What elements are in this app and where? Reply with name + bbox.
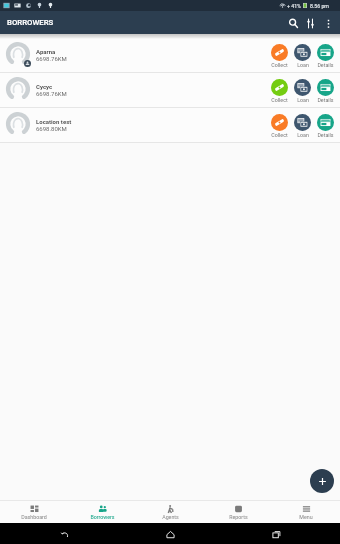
staticText: 8.56 pm: [310, 3, 329, 9]
button[interactable]: Loan: [291, 114, 314, 138]
button[interactable]: Back: [55, 525, 73, 543]
button[interactable]: Loan: [291, 44, 314, 68]
staticText: Loan: [297, 62, 309, 68]
button[interactable]: Menu: [272, 501, 340, 523]
button[interactable]: Search: [284, 14, 302, 32]
staticText: Cycyc: [36, 83, 53, 90]
staticText: Collect: [271, 97, 288, 103]
staticText: Menu: [299, 514, 313, 520]
button[interactable]: Details: [314, 114, 337, 138]
button[interactable]: Recents: [267, 525, 285, 543]
staticText: + 41%: [287, 3, 301, 9]
staticText: Reports: [229, 514, 248, 520]
staticText: Borrowers: [90, 514, 115, 520]
staticText: BORROWERS: [7, 18, 54, 27]
button[interactable]: Add borrower: [310, 469, 334, 493]
staticText: Location test: [36, 118, 72, 125]
staticText: Details: [317, 62, 334, 68]
button[interactable]: Details: [314, 79, 337, 103]
staticText: Loan: [297, 97, 309, 103]
button[interactable]: Filter: [302, 15, 319, 32]
button[interactable]: Borrowers: [68, 501, 136, 523]
button[interactable]: Collect: [268, 79, 291, 103]
button[interactable]: Location test: [0, 108, 340, 143]
staticText: Loan: [297, 132, 309, 138]
staticText: Agents: [162, 514, 179, 520]
button[interactable]: More options: [319, 14, 337, 32]
staticText: Collect: [271, 132, 288, 138]
staticText: Details: [317, 97, 334, 103]
staticText: Collect: [271, 62, 288, 68]
button[interactable]: Collect: [268, 114, 291, 138]
button[interactable]: Home: [161, 525, 179, 543]
button[interactable]: Details: [314, 44, 337, 68]
button[interactable]: Cycyc: [0, 73, 340, 108]
button[interactable]: Aparna: [0, 38, 340, 73]
staticText: 6698.80KM: [36, 125, 67, 132]
button[interactable]: Collect: [268, 44, 291, 68]
staticText: 6698.76KM: [36, 90, 67, 97]
button[interactable]: Loan: [291, 79, 314, 103]
staticText: Details: [317, 132, 334, 138]
staticText: 6698.76KM: [36, 55, 67, 62]
staticText: Aparna: [36, 48, 56, 55]
button[interactable]: Reports: [204, 501, 272, 523]
staticText: Dashboard: [21, 514, 47, 520]
button[interactable]: Dashboard: [0, 501, 68, 523]
button[interactable]: Agents: [136, 501, 204, 523]
